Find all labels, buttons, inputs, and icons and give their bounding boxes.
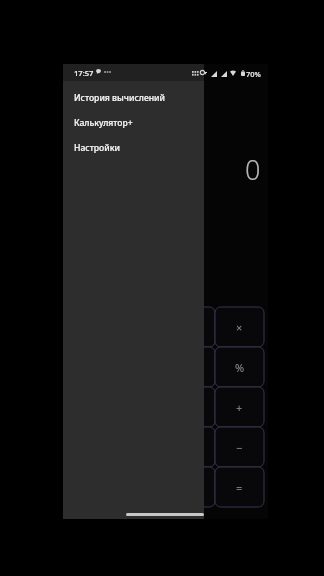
button[interactable]: plus [215,387,264,427]
button[interactable]: equals [215,467,264,507]
button[interactable]: История вычислений [63,85,204,110]
button[interactable]: digit [170,427,215,467]
button[interactable]: digit [170,387,215,427]
button[interactable]: percent [215,347,264,387]
button[interactable]: minus [215,427,264,467]
staticText: % [235,360,245,375]
staticText: 70% [246,69,261,79]
button[interactable]: Калькулятор+ [63,110,204,135]
staticText: 17:57 [74,68,94,78]
button[interactable]: digit [170,307,215,347]
staticText: 0 [245,151,261,188]
button[interactable]: digit [170,347,215,387]
staticText: История вычислений [74,92,166,104]
staticText: − [236,440,243,455]
staticText: × [236,320,243,335]
staticText: Калькулятор+ [74,117,133,129]
button[interactable]: digit [170,467,215,507]
staticText: = [236,480,243,495]
button[interactable]: Настройки [63,135,204,160]
staticText: + [236,400,243,415]
staticText: Настройки [74,142,120,154]
button[interactable]: multiply [215,307,264,347]
